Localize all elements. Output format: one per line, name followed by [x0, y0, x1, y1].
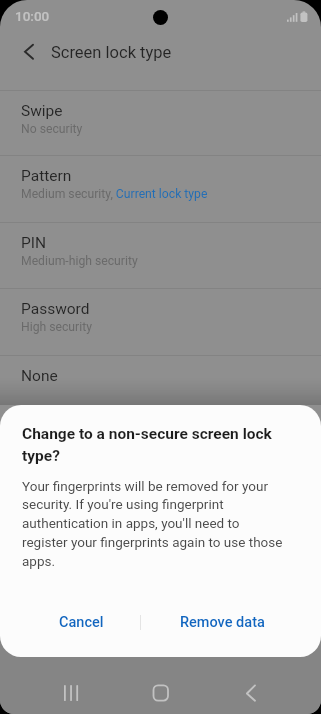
button[interactable]: [8, 36, 48, 68]
staticText: None: [21, 367, 58, 385]
staticText: Medium security, Current lock type: [21, 187, 208, 201]
staticText: Medium-high security: [21, 254, 138, 268]
button[interactable]: Swipe: [0, 91, 321, 155]
staticText: Screen lock type: [51, 43, 172, 62]
staticText: Remove data: [180, 614, 265, 631]
staticText: PIN: [21, 234, 47, 252]
button[interactable]: Cancel: [22, 596, 140, 648]
button[interactable]: [214, 664, 321, 714]
staticText: No security: [21, 122, 83, 136]
staticText: Swipe: [21, 102, 63, 120]
button[interactable]: None: [0, 356, 321, 391]
button[interactable]: Remove data: [146, 596, 299, 648]
staticText: Password: [21, 300, 90, 318]
button[interactable]: [0, 664, 107, 714]
staticText: High security: [21, 320, 92, 334]
button[interactable]: [107, 664, 214, 714]
button[interactable]: PIN: [0, 223, 321, 288]
button[interactable]: Password: [0, 289, 321, 355]
staticText: Change to a non-secure screen lock type?: [22, 425, 272, 464]
staticText: Pattern: [21, 167, 72, 185]
staticText: Cancel: [59, 614, 104, 631]
staticText: 10:00: [15, 8, 50, 24]
staticText: Your fingerprints will be removed for yo…: [22, 478, 283, 569]
button[interactable]: Pattern: [0, 156, 321, 222]
